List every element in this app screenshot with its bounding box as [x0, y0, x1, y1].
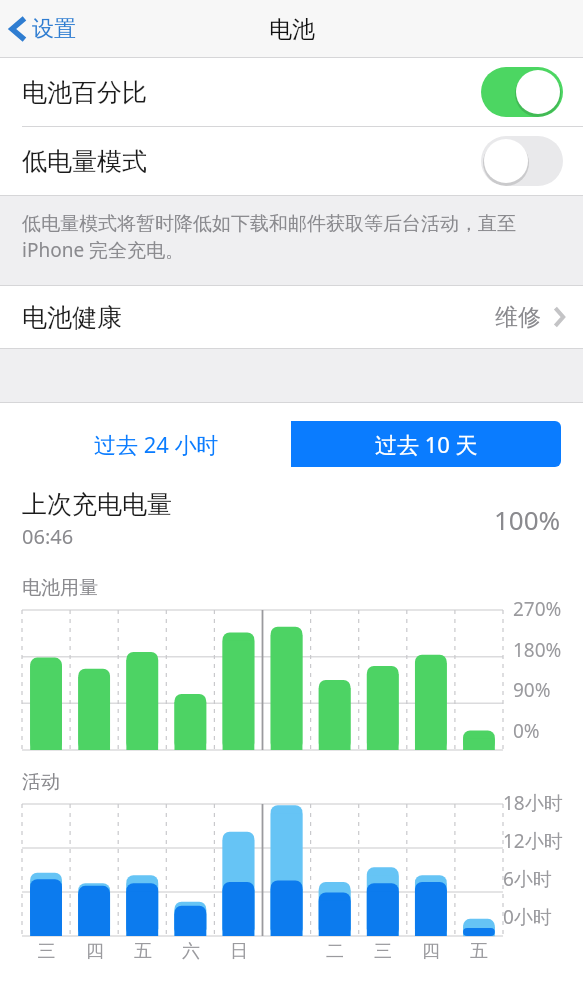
staticText: 日 [215, 940, 263, 963]
button[interactable]: 过去 10 天 [291, 421, 561, 467]
staticText: 12小时 [503, 828, 563, 854]
staticText: 电池百分比 [22, 77, 147, 108]
staticText: 三 [359, 940, 407, 963]
staticText: 四 [407, 940, 455, 963]
staticText: 二 [311, 940, 359, 963]
button[interactable]: 电池健康 [0, 286, 583, 348]
button[interactable]: 过去 24 小时 [22, 421, 291, 467]
staticText: 6小时 [503, 866, 552, 892]
staticText: 180% [513, 637, 562, 663]
staticText: 100% [494, 502, 561, 537]
staticText: 三 [22, 940, 71, 963]
staticText: 维修 [495, 303, 541, 332]
staticText: 270% [513, 596, 562, 622]
button[interactable]: On [481, 67, 563, 117]
staticText: 五 [455, 940, 503, 963]
button[interactable]: 电池百分比 [0, 58, 583, 126]
staticText: 电池用量 [22, 576, 98, 600]
staticText: 活动 [22, 770, 60, 794]
staticText: 过去 24 小时 [94, 429, 219, 459]
staticText: 五 [119, 940, 167, 963]
staticText: 四 [71, 940, 119, 963]
staticText: 低电量模式将暂时降低如下载和邮件获取等后台活动，直至 iPhone 完全充电。 [22, 210, 561, 263]
staticText: 设置 [32, 15, 76, 43]
button[interactable]: 设置 [0, 9, 88, 49]
staticText: 上次充电电量 [22, 489, 172, 520]
button[interactable]: 低电量模式 [0, 127, 583, 195]
staticText: 18小时 [503, 790, 563, 816]
staticText: 0% [513, 718, 540, 744]
staticText: 低电量模式 [22, 146, 147, 177]
staticText: 电池健康 [22, 302, 122, 333]
staticText: 六 [167, 940, 215, 963]
staticText: 90% [513, 677, 551, 703]
staticText: 0小时 [503, 904, 552, 930]
button[interactable]: Off [481, 136, 563, 186]
staticText: 06:46 [22, 523, 74, 550]
staticText: 过去 10 天 [375, 429, 478, 459]
staticText: 电池 [269, 15, 315, 44]
